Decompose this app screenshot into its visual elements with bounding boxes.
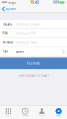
staticText: Usuario (2, 23, 12, 26)
staticText: 88% (53, 1, 59, 4)
staticText: Introduce móvil (15, 41, 37, 44)
staticText: ••••• (2, 1, 7, 4)
staticText: Yoigo (7, 1, 16, 4)
button[interactable]: Regístrate (0, 57, 67, 69)
button[interactable]: Recientes (17, 105, 34, 119)
staticText: Contactos (38, 114, 45, 116)
staticText: 15:42 (30, 1, 39, 4)
staticText: País (2, 50, 7, 53)
staticText: España (15, 50, 23, 53)
button[interactable]: Teclado (0, 105, 17, 119)
staticText: Introduce PIN (15, 32, 35, 35)
button[interactable]: Ajustes (50, 105, 67, 119)
staticText: Ajustes (56, 115, 61, 116)
button[interactable]: País (0, 47, 67, 56)
staticText: Recientes (22, 114, 29, 116)
button[interactable]: ¿Has olvidado tu clave? (0, 74, 67, 78)
button[interactable]: Contactos (33, 105, 50, 119)
staticText: PIN (2, 32, 7, 35)
staticText: Teclado (5, 114, 11, 116)
staticText: Ajustes (6, 7, 16, 11)
staticText: Nº móvil (2, 41, 13, 44)
staticText: Regístrate (26, 62, 40, 65)
staticText: Introduce usuario (15, 23, 40, 26)
button[interactable]: Ajustes (0, 5, 18, 13)
staticText: ¿Has olvidado tu clave? (18, 74, 48, 77)
